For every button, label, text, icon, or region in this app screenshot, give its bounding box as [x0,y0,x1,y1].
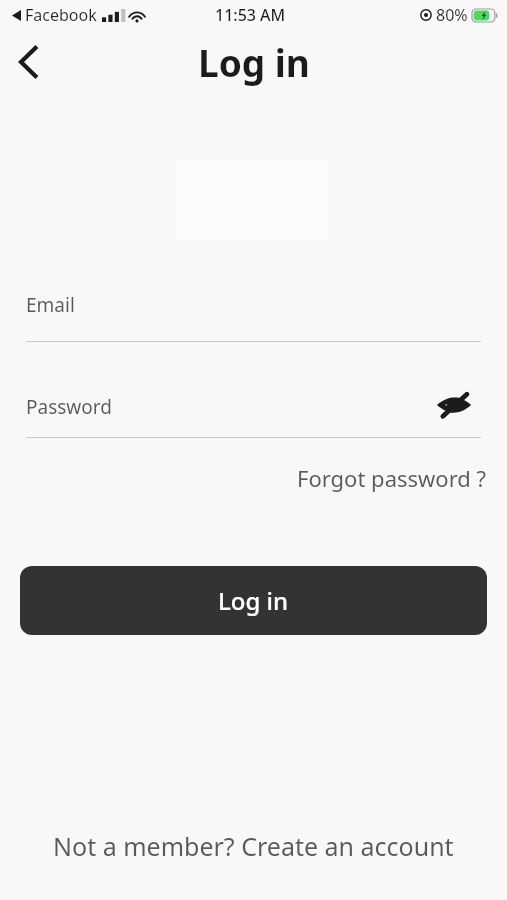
button[interactable]: Not a member? Create an account [0,822,507,870]
staticText: Facebook [25,4,97,26]
staticText: Password [26,394,112,420]
staticText: Log in [198,37,310,87]
staticText: 80% [436,4,468,26]
button[interactable]: Log in [20,566,487,635]
staticText: Not a member? Create an account [53,829,454,863]
button[interactable]: Password [0,377,507,437]
button[interactable]: Show password [433,384,475,426]
button[interactable]: Email [0,275,507,343]
button[interactable]: Back [6,39,52,85]
staticText: Email [26,292,75,318]
staticText: Log in [218,584,289,617]
staticText: Forgot password ? [297,463,487,493]
button[interactable]: Forgot password ? [291,459,493,497]
staticText: 11:53 AM [215,4,286,26]
